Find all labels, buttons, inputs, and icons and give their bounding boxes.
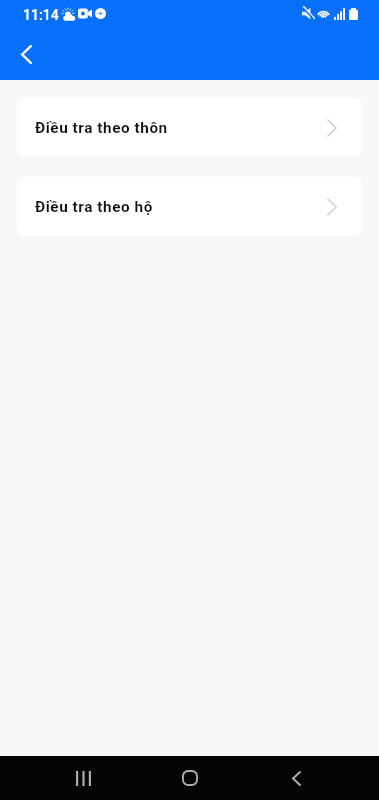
button[interactable]: Back	[6, 34, 46, 74]
staticText: Điều tra theo hộ	[35, 198, 153, 216]
button[interactable]: Back	[273, 756, 319, 800]
button[interactable]: Điều tra theo hộ	[17, 177, 362, 236]
staticText: Điều tra theo thôn	[35, 119, 168, 137]
staticText: 11:14	[23, 7, 59, 24]
button[interactable]: Recent apps	[60, 756, 106, 800]
button[interactable]: Điều tra theo thôn	[17, 98, 362, 157]
button[interactable]: Home	[167, 756, 213, 800]
